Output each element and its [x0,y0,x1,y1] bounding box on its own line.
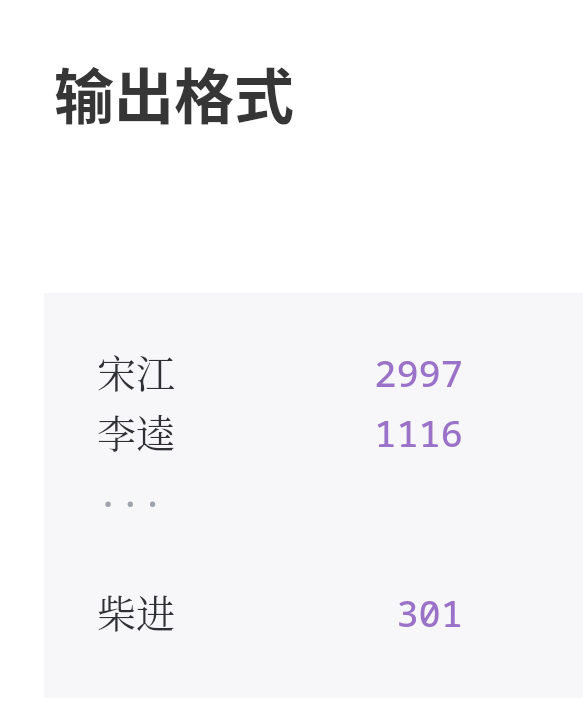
staticText: ... [97,467,164,517]
button[interactable]: 输出格式 [40,40,320,136]
staticText: 柴进 [97,583,176,639]
staticText: 宋江 [97,343,176,399]
staticText: 李逵 [97,403,176,459]
staticText: 输出格式 [54,49,294,136]
button[interactable]: Sample output code block [44,293,583,698]
staticText: 1116 [97,407,463,457]
staticText: 2997 [97,347,463,397]
staticText: 301 [97,587,463,637]
